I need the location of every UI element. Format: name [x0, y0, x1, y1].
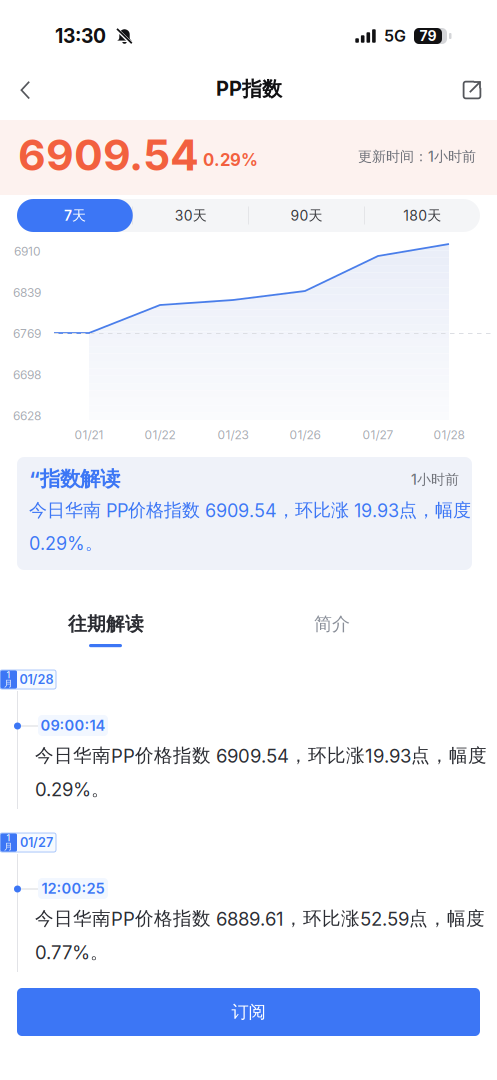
- staticText: 6698: [13, 367, 41, 382]
- staticText: 01/27: [20, 835, 53, 850]
- staticText: 6909.54: [18, 129, 199, 181]
- staticText: 6910: [14, 244, 41, 259]
- button[interactable]: 180天: [364, 199, 480, 232]
- staticText: 5G: [384, 26, 406, 46]
- staticText: 1: [6, 670, 10, 680]
- staticText: 更新时间：1小时前: [358, 148, 476, 165]
- staticText: 01/26: [289, 428, 320, 442]
- button[interactable]: Back: [3, 68, 47, 112]
- button[interactable]: 90天: [248, 199, 364, 232]
- staticText: 01/28: [19, 672, 53, 687]
- staticText: 79: [419, 27, 436, 44]
- staticText: 09:00:14: [40, 717, 105, 734]
- staticText: 订阅: [231, 1001, 265, 1023]
- staticText: 12:00:25: [41, 880, 104, 897]
- staticText: 0.29%: [203, 150, 258, 170]
- staticText: 往期解读: [68, 612, 144, 636]
- staticText: 6628: [13, 409, 41, 423]
- button[interactable]: 订阅: [17, 988, 480, 1036]
- staticText: 6769: [13, 326, 41, 341]
- staticText: 7天: [64, 207, 86, 224]
- staticText: 简介: [314, 613, 350, 635]
- staticText: 月: [4, 841, 13, 852]
- staticText: 30天: [175, 207, 207, 224]
- staticText: 01/23: [217, 428, 248, 442]
- staticText: 月: [4, 678, 13, 689]
- staticText: “指数解读: [29, 466, 120, 492]
- staticText: 1: [6, 833, 10, 843]
- button[interactable]: Share: [450, 68, 494, 112]
- staticText: 90天: [290, 207, 322, 224]
- staticText: 01/28: [433, 428, 464, 442]
- staticText: 01/22: [144, 428, 175, 442]
- staticText: 今日华南 PP价格指数 6909.54，环比涨 19.93点，幅度 0.29%。: [29, 499, 471, 554]
- button[interactable]: 往期解读: [46, 613, 166, 635]
- staticText: 1小时前: [411, 471, 459, 488]
- staticText: 13:30: [55, 24, 106, 48]
- button[interactable]: 简介: [272, 613, 392, 635]
- staticText: 今日华南PP价格指数 6889.61，环比涨52.59点，幅度 0.77%。: [35, 907, 485, 964]
- staticText: 180天: [403, 207, 441, 224]
- staticText: 01/27: [362, 428, 393, 442]
- staticText: 01/21: [74, 428, 103, 442]
- button[interactable]: 7天: [17, 199, 133, 232]
- staticText: 6839: [13, 285, 41, 300]
- staticText: PP指数: [216, 76, 282, 102]
- button[interactable]: 30天: [133, 199, 249, 232]
- staticText: 今日华南PP价格指数 6909.54，环比涨19.93点，幅度 0.29%。: [35, 744, 487, 801]
